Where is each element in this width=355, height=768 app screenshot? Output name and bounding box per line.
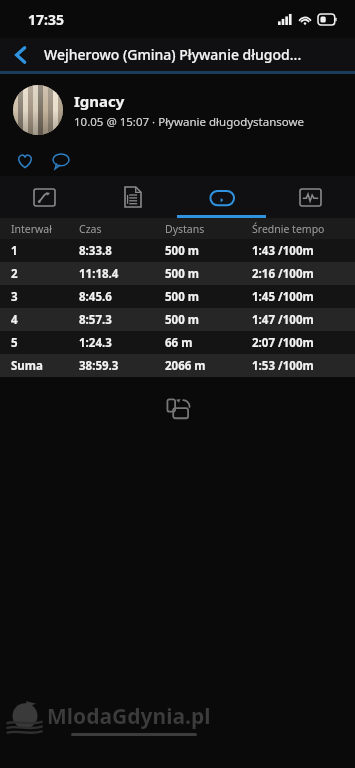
staticText: 38:59.3 <box>79 358 119 374</box>
staticText: 2:07 /100m <box>252 335 314 351</box>
staticText: 66 m <box>165 335 193 351</box>
button[interactable]: Laps <box>177 176 266 218</box>
staticText: 1:45 /100m <box>252 289 314 305</box>
staticText: Czas <box>79 222 102 236</box>
button[interactable]: 1 <box>0 239 355 262</box>
staticText: 500 m <box>165 312 199 328</box>
button[interactable]: 4 <box>0 308 355 331</box>
staticText: 11:18.4 <box>79 266 119 282</box>
staticText: MlodaGdynia.pl <box>47 702 211 731</box>
staticText: 8:57.3 <box>79 312 112 328</box>
button[interactable]: 5 <box>0 331 355 354</box>
button[interactable]: Comment <box>48 148 74 174</box>
staticText: 1:24.3 <box>79 335 112 351</box>
staticText: Interwał <box>11 222 52 236</box>
staticText: 8:33.8 <box>79 243 112 259</box>
button[interactable]: Map <box>0 176 88 218</box>
staticText: 4 <box>11 312 18 328</box>
button[interactable]: Suma <box>0 354 355 377</box>
staticText: 500 m <box>165 266 199 282</box>
staticText: 8:45.6 <box>79 289 112 305</box>
staticText: 1:47 /100m <box>252 312 314 328</box>
staticText: Ignacy <box>74 91 125 111</box>
staticText: 2:16 /100m <box>252 266 314 282</box>
staticText: 1:43 /100m <box>252 243 314 259</box>
staticText: Wejherowo (Gmina) Pływanie długod... <box>44 45 302 64</box>
staticText: 1 <box>11 243 18 259</box>
staticText: 2 <box>11 266 18 282</box>
staticText: 17:35 <box>28 10 64 29</box>
button[interactable]: Splits list <box>88 176 177 218</box>
staticText: 10.05 @ 15:07 · Pływanie długodystansowe <box>74 114 305 130</box>
staticText: 2066 m <box>165 358 206 374</box>
staticText: 5 <box>11 335 18 351</box>
staticText: 500 m <box>165 289 199 305</box>
staticText: Dystans <box>165 222 205 236</box>
button[interactable]: Ignacy <box>0 74 355 146</box>
staticText: 500 m <box>165 243 199 259</box>
staticText: 3 <box>11 289 18 305</box>
button[interactable]: Rotate screen <box>160 391 196 427</box>
button[interactable]: Back <box>0 38 40 71</box>
button[interactable]: Heart rate <box>266 176 355 218</box>
staticText: Suma <box>11 358 43 374</box>
staticText: 1:53 /100m <box>252 358 314 374</box>
button[interactable]: 3 <box>0 285 355 308</box>
button[interactable]: 2 <box>0 262 355 285</box>
button[interactable]: Like <box>12 148 38 174</box>
staticText: Średnie tempo <box>252 222 325 236</box>
